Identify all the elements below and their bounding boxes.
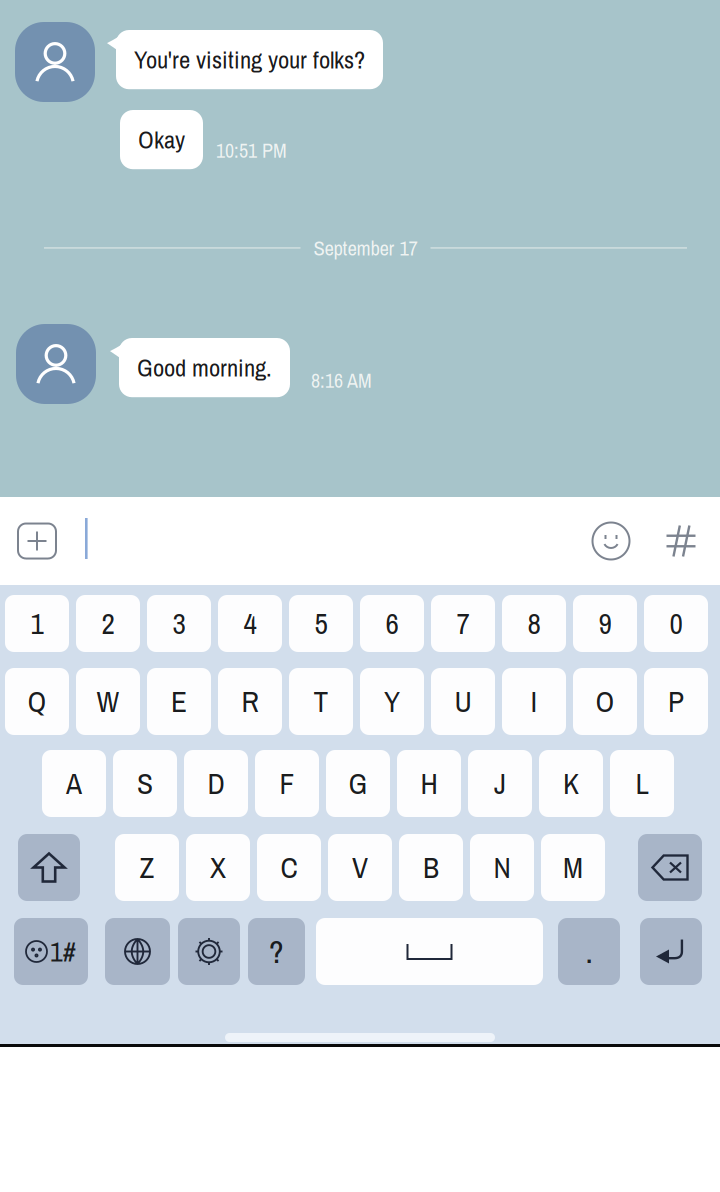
button[interactable]: .: [558, 918, 620, 985]
staticText: O: [595, 682, 614, 721]
button[interactable]: F: [255, 750, 319, 817]
staticText: C: [280, 848, 297, 887]
staticText: .: [585, 930, 592, 973]
staticText: 0: [669, 604, 682, 643]
staticText: W: [96, 682, 119, 721]
button[interactable]: M: [541, 834, 605, 901]
button[interactable]: D: [184, 750, 248, 817]
button[interactable]: N: [470, 834, 534, 901]
staticText: 2: [101, 604, 114, 643]
button[interactable]: H: [397, 750, 461, 817]
button[interactable]: K: [539, 750, 603, 817]
button[interactable]: 6: [360, 595, 424, 652]
staticText: E: [171, 682, 187, 721]
staticText: R: [241, 682, 258, 721]
staticText: 7: [456, 604, 469, 643]
button[interactable]: A: [42, 750, 106, 817]
button[interactable]: 8: [502, 595, 566, 652]
button[interactable]: 4: [218, 595, 282, 652]
button[interactable]: J: [468, 750, 532, 817]
staticText: D: [207, 764, 224, 803]
staticText: 8:16 AM: [311, 367, 372, 394]
button[interactable]: Space: [316, 918, 543, 985]
staticText: T: [313, 682, 328, 721]
staticText: 1#: [50, 933, 76, 970]
staticText: G: [348, 764, 367, 803]
button[interactable]: Y: [360, 668, 424, 735]
staticText: F: [279, 764, 294, 803]
staticText: Okay: [138, 123, 185, 156]
staticText: H: [420, 764, 437, 803]
button[interactable]: Delete: [638, 834, 702, 901]
staticText: 3: [172, 604, 185, 643]
staticText: V: [352, 848, 368, 887]
staticText: September 17: [313, 234, 417, 262]
button[interactable]: 2: [76, 595, 140, 652]
staticText: A: [66, 764, 82, 803]
button[interactable]: G: [326, 750, 390, 817]
staticText: K: [563, 764, 579, 803]
button[interactable]: S: [113, 750, 177, 817]
button[interactable]: 3: [147, 595, 211, 652]
staticText: 10:51 PM: [216, 137, 287, 164]
staticText: I: [530, 682, 537, 721]
staticText: J: [494, 764, 506, 803]
button[interactable]: 9: [573, 595, 637, 652]
staticText: Y: [384, 682, 400, 721]
staticText: X: [210, 848, 226, 887]
button[interactable]: Shift: [18, 834, 80, 901]
staticText: B: [423, 848, 439, 887]
button[interactable]: Z: [115, 834, 179, 901]
staticText: 8: [527, 604, 540, 643]
button[interactable]: V: [328, 834, 392, 901]
button[interactable]: Return: [640, 918, 702, 985]
button[interactable]: 7: [431, 595, 495, 652]
staticText: 5: [314, 604, 327, 643]
staticText: L: [635, 764, 648, 803]
staticText: Good morning.: [137, 351, 272, 384]
button[interactable]: Q: [5, 668, 69, 735]
button[interactable]: B: [399, 834, 463, 901]
button[interactable]: 0: [644, 595, 708, 652]
staticText: M: [563, 848, 583, 887]
staticText: You're visiting your folks?: [134, 43, 365, 76]
button[interactable]: Add attachment: [11, 515, 63, 567]
button[interactable]: Hashtag: [655, 515, 707, 567]
button[interactable]: U: [431, 668, 495, 735]
button[interactable]: Settings: [178, 918, 240, 985]
button[interactable]: Emoji: [585, 515, 637, 567]
staticText: S: [137, 764, 153, 803]
button[interactable]: C: [257, 834, 321, 901]
button[interactable]: 5: [289, 595, 353, 652]
staticText: 1: [30, 604, 43, 643]
staticText: U: [454, 682, 471, 721]
button[interactable]: Emoji and symbols: [14, 918, 88, 985]
button[interactable]: T: [289, 668, 353, 735]
staticText: 4: [243, 604, 256, 643]
staticText: Z: [139, 848, 154, 887]
staticText: 6: [385, 604, 398, 643]
button[interactable]: L: [610, 750, 674, 817]
button[interactable]: ?: [248, 918, 305, 985]
button[interactable]: 1: [5, 595, 69, 652]
button[interactable]: R: [218, 668, 282, 735]
button[interactable]: W: [76, 668, 140, 735]
button[interactable]: O: [573, 668, 637, 735]
staticText: Q: [27, 682, 46, 721]
staticText: P: [668, 682, 684, 721]
button[interactable]: Change language: [105, 918, 170, 985]
button[interactable]: E: [147, 668, 211, 735]
staticText: ?: [269, 930, 284, 973]
staticText: 9: [598, 604, 611, 643]
button[interactable]: I: [502, 668, 566, 735]
button[interactable]: P: [644, 668, 708, 735]
button[interactable]: X: [186, 834, 250, 901]
staticText: N: [493, 848, 510, 887]
